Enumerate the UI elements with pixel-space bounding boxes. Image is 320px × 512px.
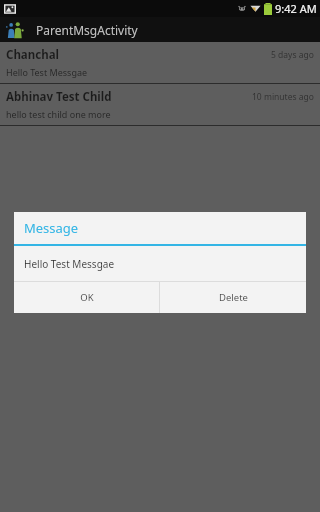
staticText: 9:42 AM [275,1,317,16]
button[interactable]: Abhinav Test Child [0,84,320,125]
staticText: ParentMsgActivity [36,22,138,38]
staticText: Chanchal [6,47,59,63]
button[interactable]: Delete [160,282,306,313]
staticText: Hello Test Messgae [24,257,115,271]
staticText: 10 minutes ago [252,91,314,103]
staticText: OK [80,291,94,304]
staticText: 5 days ago [271,49,314,61]
button[interactable]: Chanchal [0,42,320,83]
staticText: hello test child one more [6,108,111,120]
staticText: Abhinav Test Child [6,89,112,105]
button[interactable]: OK [14,282,159,313]
staticText: Hello Test Messgae [6,66,88,78]
staticText: Delete [219,291,248,304]
staticText: Message [24,219,79,237]
